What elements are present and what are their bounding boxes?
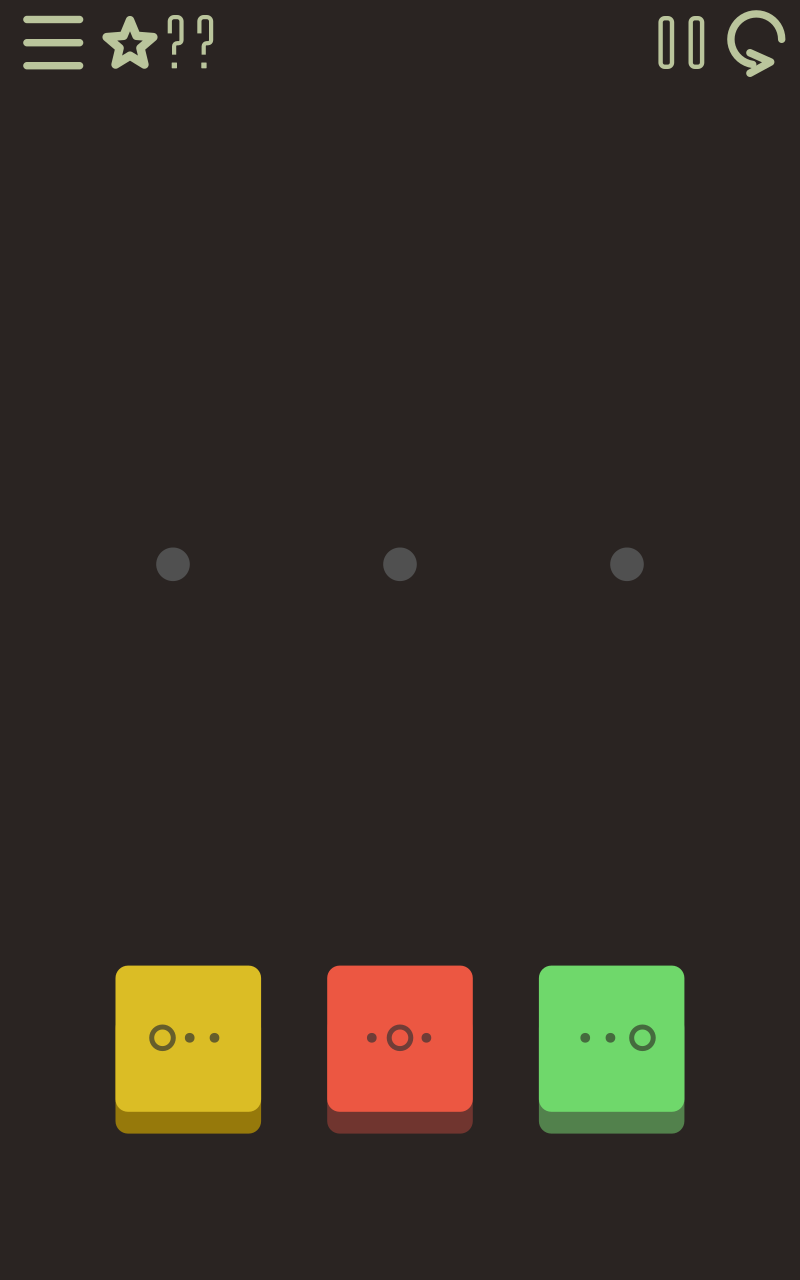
button[interactable]: Favourite bbox=[0, 0, 800, 1280]
button[interactable]: Pause bbox=[0, 0, 800, 1280]
button[interactable]: Restart bbox=[0, 0, 800, 1280]
button[interactable]: Yellow key bbox=[0, 0, 800, 1280]
button[interactable]: Red key bbox=[0, 0, 800, 1280]
button[interactable]: Menu bbox=[0, 0, 800, 1280]
button[interactable]: Green key bbox=[0, 0, 800, 1280]
